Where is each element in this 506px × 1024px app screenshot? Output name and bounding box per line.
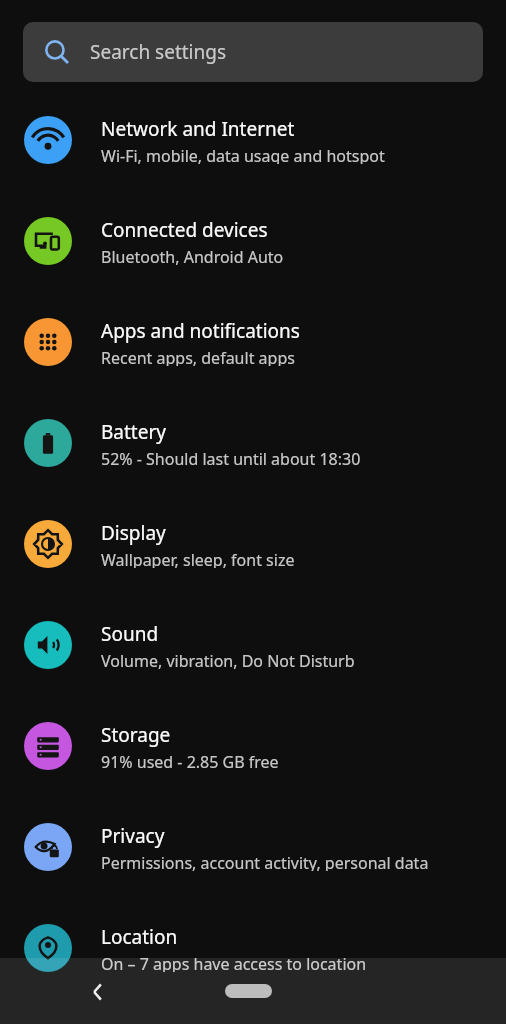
staticText: Bluetooth, Android Auto xyxy=(101,246,284,265)
staticText: On – 7 apps have access to location xyxy=(101,953,367,972)
button[interactable]: Display xyxy=(0,520,506,568)
staticText: Search settings xyxy=(90,39,227,65)
staticText: Recent apps, default apps xyxy=(101,347,295,366)
button[interactable]: Back xyxy=(86,980,110,1004)
staticText: Privacy xyxy=(101,823,165,849)
button[interactable]: Network and Internet xyxy=(0,116,506,164)
staticText: Storage xyxy=(101,722,171,748)
staticText: Apps and notifications xyxy=(101,318,300,344)
button[interactable]: Apps and notifications xyxy=(0,318,506,366)
button[interactable]: Home xyxy=(225,984,272,998)
button[interactable]: Sound xyxy=(0,621,506,669)
staticText: Network and Internet xyxy=(101,116,295,142)
staticText: Location xyxy=(101,924,178,950)
staticText: Permissions, account activity, personal … xyxy=(101,852,429,871)
staticText: Connected devices xyxy=(101,217,268,243)
staticText: 91% used - 2.85 GB free xyxy=(101,751,279,770)
staticText: Volume, vibration, Do Not Disturb xyxy=(101,650,355,669)
staticText: Wallpaper, sleep, font size xyxy=(101,549,295,568)
button[interactable]: Battery xyxy=(0,419,506,467)
staticText: Battery xyxy=(101,419,166,445)
button[interactable]: Search settings xyxy=(23,22,483,82)
button[interactable]: Privacy xyxy=(0,823,506,871)
staticText: 52% - Should last until about 18:30 xyxy=(101,448,361,467)
staticText: Sound xyxy=(101,621,159,647)
button[interactable]: Storage xyxy=(0,722,506,770)
staticText: Wi-Fi, mobile, data usage and hotspot xyxy=(101,145,385,164)
button[interactable]: Connected devices xyxy=(0,217,506,265)
button[interactable]: Location xyxy=(0,924,506,972)
staticText: Display xyxy=(101,520,166,546)
